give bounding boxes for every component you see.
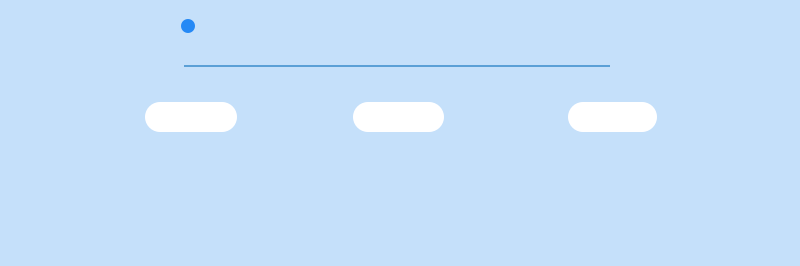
- button[interactable]: Second option: [353, 102, 444, 132]
- button[interactable]: First option: [145, 102, 237, 132]
- button[interactable]: Status indicator: [181, 19, 195, 33]
- button[interactable]: Third option: [568, 102, 657, 132]
